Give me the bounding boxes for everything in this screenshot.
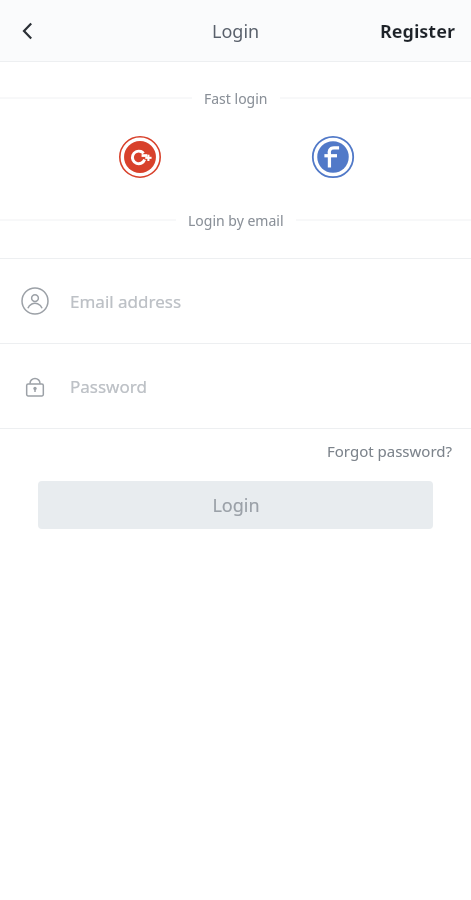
button[interactable]: Email address — [0, 259, 471, 343]
staticText: Register — [380, 19, 455, 44]
button[interactable]: Sign in with Facebook — [310, 134, 356, 180]
staticText: Login — [212, 19, 260, 44]
staticText: Login by email — [188, 211, 284, 230]
button[interactable]: Back — [0, 3, 56, 59]
button[interactable]: Register — [364, 7, 471, 56]
staticText: Login — [212, 493, 260, 518]
staticText: Password — [70, 375, 147, 398]
staticText: Forgot password? — [327, 441, 453, 461]
button[interactable]: Forgot password? — [309, 429, 471, 473]
staticText: Email address — [70, 290, 182, 313]
button[interactable]: Login — [38, 481, 433, 529]
button[interactable]: Password — [0, 344, 471, 428]
staticText: Fast login — [204, 89, 268, 108]
button[interactable]: Sign in with Google — [117, 134, 163, 180]
